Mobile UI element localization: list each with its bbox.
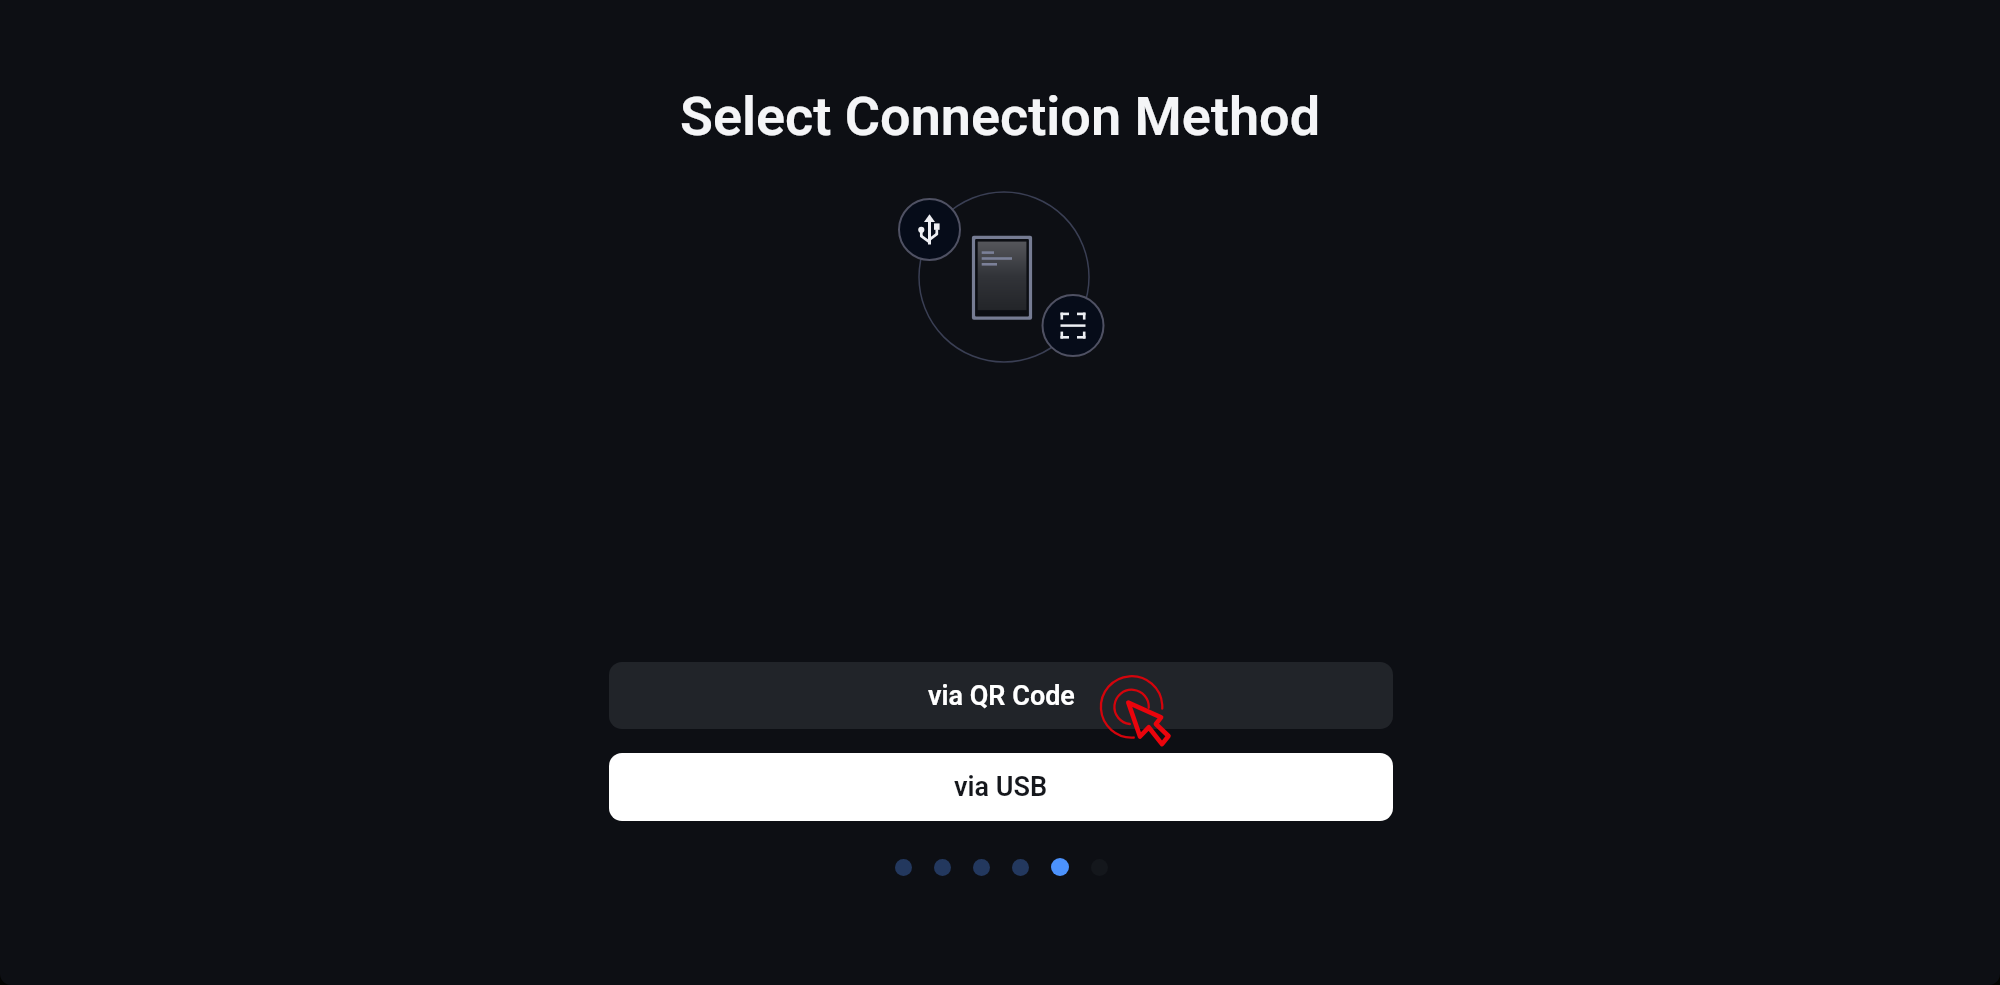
button[interactable]: Page 1 [895, 859, 912, 876]
button[interactable]: Page 3 [973, 859, 990, 876]
button[interactable]: via QR Code [609, 662, 1393, 729]
button[interactable]: Page 5 [1051, 858, 1069, 876]
button[interactable]: Page 6 [1091, 859, 1108, 876]
button[interactable]: Page 2 [934, 859, 951, 876]
staticText: Select Connection Method [0, 85, 2000, 148]
button[interactable]: via USB [609, 753, 1393, 821]
button[interactable]: Page 4 [1012, 859, 1029, 876]
staticText: via USB [954, 771, 1048, 803]
staticText: via QR Code [928, 680, 1075, 712]
